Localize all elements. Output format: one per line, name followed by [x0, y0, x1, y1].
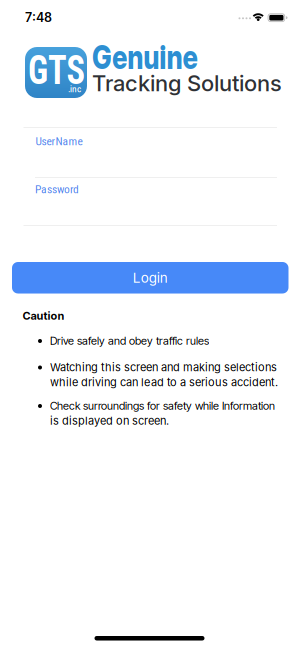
staticText: UserName — [35, 134, 82, 148]
staticText: Drive safely and obey traffic rules — [50, 334, 209, 347]
staticText: while driving can lead to a serious acci… — [50, 375, 278, 389]
staticText: 7:48 — [25, 10, 52, 25]
staticText: Watching this screen and making selectio… — [50, 360, 277, 374]
staticText: is displayed on screen. — [50, 414, 169, 427]
staticText: Password — [35, 182, 79, 196]
staticText: Tracking Solutions — [92, 70, 282, 97]
staticText: GTS — [22, 46, 90, 94]
staticText: Check surroundings for safety while Info… — [50, 399, 275, 412]
staticText: Login — [133, 270, 168, 286]
staticText: Caution — [22, 309, 64, 322]
staticText: Genuine — [92, 37, 224, 77]
staticText: .inc — [68, 85, 81, 94]
